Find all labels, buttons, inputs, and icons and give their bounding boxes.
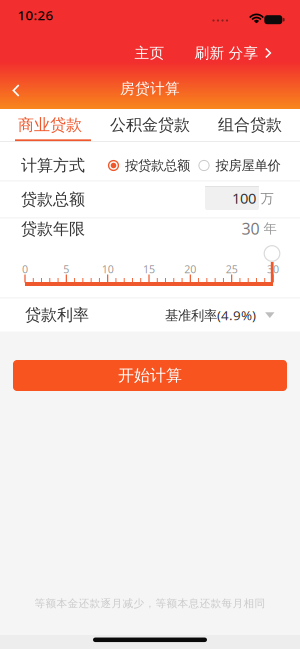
staticText: 组合贷款 bbox=[218, 115, 282, 135]
staticText: 贷款总额 bbox=[21, 190, 85, 209]
staticText: 等额本金还款逐月减少，等额本息还款每月相同 bbox=[34, 597, 265, 610]
staticText: 分享 bbox=[228, 44, 258, 62]
staticText: 主页 bbox=[134, 44, 164, 62]
button[interactable]: 按贷款总额 bbox=[108, 157, 190, 174]
staticText: 房贷计算 bbox=[120, 79, 180, 97]
button[interactable]: 分享 bbox=[228, 44, 258, 62]
staticText: 30 bbox=[267, 262, 279, 276]
staticText: 年 bbox=[263, 220, 276, 237]
staticText: 刷新 bbox=[194, 44, 224, 62]
staticText: 贷款年限 bbox=[21, 219, 85, 239]
staticText: 计算方式 bbox=[21, 156, 85, 175]
staticText: 开始计算 bbox=[118, 366, 182, 385]
button[interactable]: 100 bbox=[205, 186, 259, 210]
button[interactable] bbox=[12, 84, 20, 97]
button[interactable]: 贷款利率 bbox=[0, 298, 300, 331]
staticText: 30 bbox=[241, 218, 259, 239]
staticText: 万 bbox=[260, 190, 273, 207]
button[interactable]: 刷新 bbox=[194, 44, 224, 62]
button[interactable]: 商业贷款 bbox=[0, 109, 100, 141]
staticText: 基准利率(4.9%) bbox=[165, 306, 256, 324]
staticText: 20 bbox=[184, 262, 196, 276]
staticText: 10 bbox=[102, 262, 114, 276]
staticText: 公积金贷款 bbox=[110, 115, 190, 135]
button[interactable]: 主页 bbox=[134, 44, 164, 62]
button[interactable]: 公积金贷款 bbox=[100, 109, 200, 141]
staticText: 贷款利率 bbox=[25, 305, 89, 325]
button[interactable]: 组合贷款 bbox=[200, 109, 300, 141]
staticText: 25 bbox=[226, 262, 238, 276]
staticText: 按贷款总额 bbox=[125, 157, 190, 174]
staticText: 商业贷款 bbox=[18, 115, 82, 135]
staticText: 100 bbox=[232, 188, 256, 208]
staticText: 10:26 bbox=[17, 6, 53, 24]
staticText: 5 bbox=[63, 262, 69, 276]
button[interactable]: 开始计算 bbox=[13, 360, 287, 391]
staticText: 15 bbox=[143, 262, 155, 276]
button[interactable]: 按房屋单价 bbox=[198, 157, 281, 174]
button[interactable] bbox=[265, 48, 271, 58]
button[interactable] bbox=[264, 245, 280, 262]
staticText: 按房屋单价 bbox=[216, 157, 281, 174]
staticText: 0 bbox=[22, 262, 28, 276]
